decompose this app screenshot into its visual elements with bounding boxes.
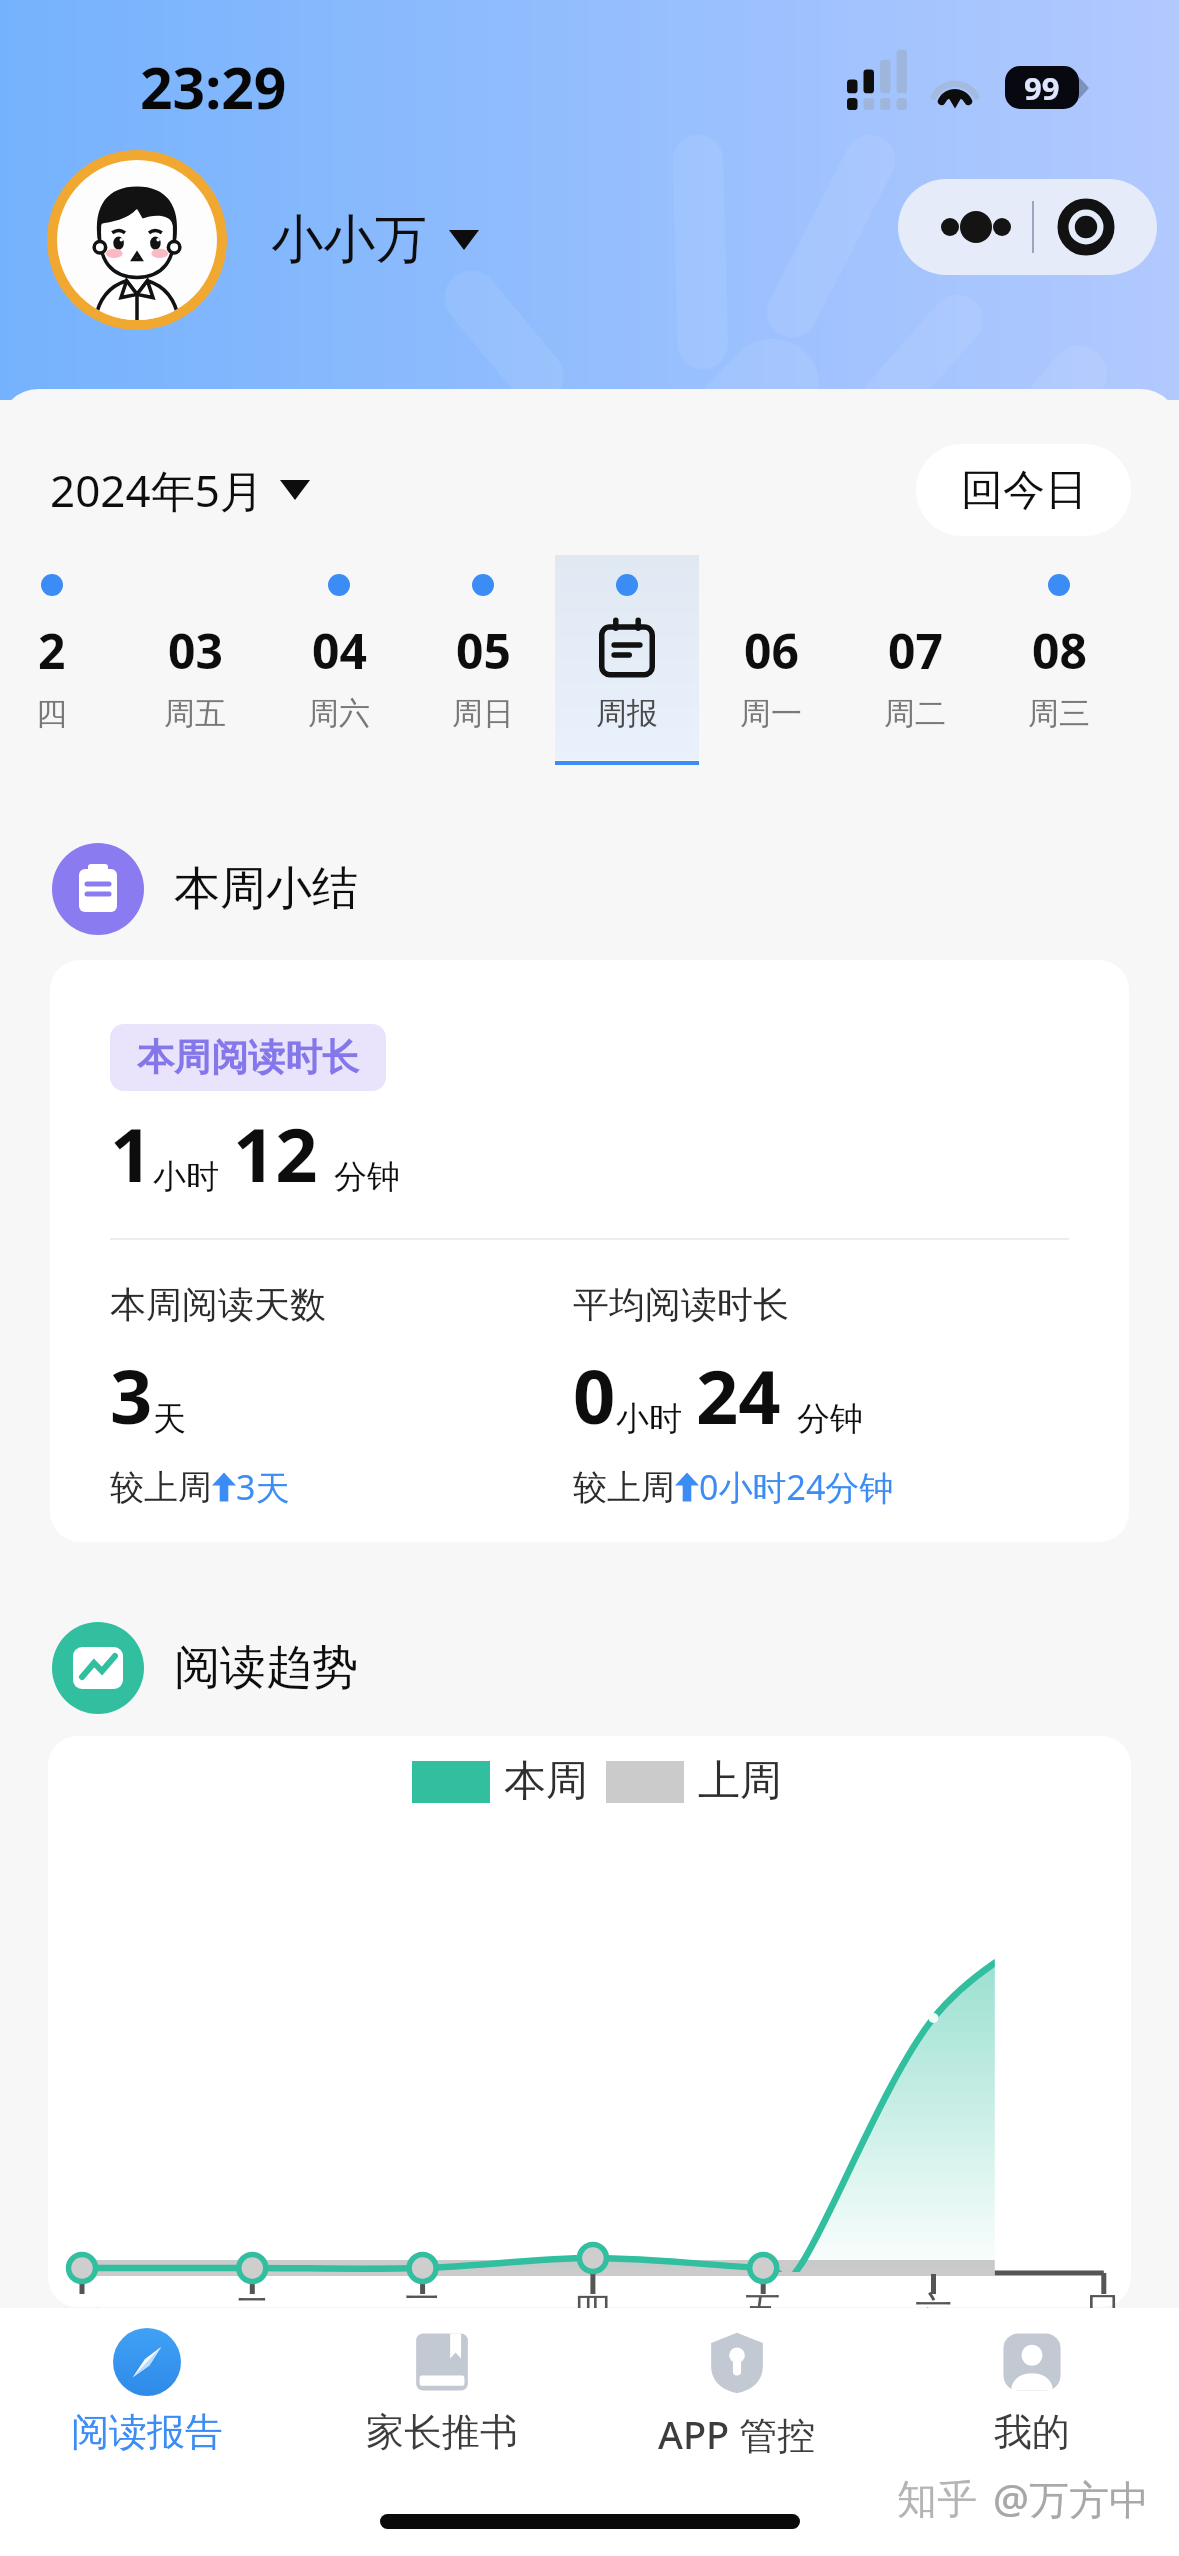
staticText: 较上周 <box>573 1466 675 1509</box>
staticText: 3 <box>110 1345 153 1446</box>
other: Close mini program <box>1058 199 1114 255</box>
staticText: 四 <box>36 694 67 733</box>
staticText: 小时 <box>153 1156 219 1198</box>
button[interactable]: 阅读报告 <box>0 2308 294 2486</box>
staticText: 一 <box>63 2287 101 2335</box>
staticText: 小小万 <box>271 207 427 273</box>
staticText: 分钟 <box>334 1156 400 1198</box>
staticText: 周五 <box>164 694 226 733</box>
staticText: 阅读趋势 <box>174 1639 358 1697</box>
button[interactable]: 05 <box>411 555 555 765</box>
staticText: 家长推书 <box>366 2408 518 2456</box>
staticText: 五 <box>744 2287 782 2335</box>
staticText: 本周小结 <box>174 860 358 918</box>
staticText: 03 <box>168 618 223 678</box>
staticText: 24 <box>696 1345 781 1446</box>
staticText: 99 <box>1024 67 1060 109</box>
staticText: 回今日 <box>961 464 1087 517</box>
staticText: 周一 <box>740 694 802 733</box>
button[interactable]: 07 <box>843 555 987 765</box>
staticText: 平均阅读时长 <box>573 1282 789 1327</box>
button[interactable]: 我的 <box>884 2308 1179 2486</box>
staticText: 我的 <box>994 2408 1070 2456</box>
button[interactable]: 小小万 <box>271 207 479 273</box>
staticText: 四 <box>573 2287 611 2335</box>
staticText: 本周 <box>504 1755 588 1808</box>
staticText: 分钟 <box>797 1398 863 1440</box>
button[interactable]: 2 <box>0 555 123 765</box>
staticText: 日 <box>1084 2287 1122 2335</box>
button[interactable]: 03 <box>123 555 267 765</box>
staticText: 知乎 <box>897 2474 977 2524</box>
button[interactable]: More options <box>898 179 1157 275</box>
button[interactable]: 家长推书 <box>294 2308 589 2486</box>
staticText: 六 <box>914 2287 952 2335</box>
staticText: 较上周 <box>110 1466 212 1509</box>
staticText: 07 <box>888 618 943 678</box>
button[interactable]: 回今日 <box>916 444 1131 536</box>
staticText: 1 <box>110 1103 153 1204</box>
staticText: 3天 <box>236 1464 290 1510</box>
button[interactable]: APP 管控 <box>589 2308 884 2486</box>
staticText: 上周 <box>698 1755 782 1808</box>
staticText: 06 <box>744 618 799 678</box>
staticText: 05 <box>456 618 511 678</box>
staticText: @万方中 <box>993 2471 1149 2526</box>
button[interactable]: 08 <box>987 555 1131 765</box>
staticText: 小时 <box>616 1398 682 1440</box>
button[interactable]: 周报 <box>555 555 699 765</box>
button[interactable]: 06 <box>699 555 843 765</box>
staticText: 2024年5月 <box>50 460 264 520</box>
staticText: 2 <box>38 618 66 678</box>
other: More options <box>942 212 1010 242</box>
button[interactable]: Avatar <box>47 150 227 330</box>
staticText: 周三 <box>1028 694 1090 733</box>
staticText: 周六 <box>308 694 370 733</box>
staticText: APP 管控 <box>658 2408 816 2460</box>
staticText: 23:29 <box>140 48 287 126</box>
staticText: 0小时24分钟 <box>699 1464 894 1510</box>
staticText: 二 <box>233 2287 271 2335</box>
button[interactable]: 04 <box>267 555 411 765</box>
staticText: 本周阅读时长 <box>137 1034 359 1081</box>
staticText: 0 <box>573 1345 616 1446</box>
staticText: 阅读报告 <box>71 2408 223 2456</box>
staticText: 周日 <box>452 694 514 733</box>
staticText: 周二 <box>884 694 946 733</box>
button[interactable]: 2024年5月 <box>50 460 310 520</box>
staticText: 天 <box>153 1398 186 1440</box>
staticText: 本周阅读天数 <box>110 1282 326 1327</box>
staticText: 12 <box>233 1103 318 1204</box>
staticText: 08 <box>1032 618 1087 678</box>
staticText: 周报 <box>596 694 658 733</box>
staticText: 04 <box>312 618 367 678</box>
staticText: 三 <box>403 2287 441 2335</box>
